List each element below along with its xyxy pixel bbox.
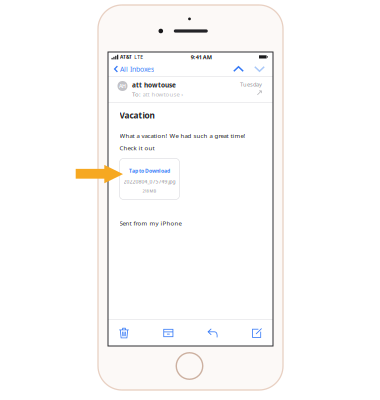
button[interactable]: All Inboxes — [110, 61, 158, 77]
staticText: All Inboxes — [120, 64, 154, 74]
staticText: att howtouse — [132, 80, 176, 89]
staticText: Tap to Download — [129, 167, 170, 174]
staticText: Vacation — [119, 110, 154, 121]
button[interactable]: Reply — [197, 321, 229, 345]
staticText: Tuesday — [240, 80, 262, 88]
staticText: Check it out — [119, 144, 154, 152]
button[interactable]: AH — [108, 76, 273, 102]
staticText: Sent from my iPhone — [119, 219, 181, 227]
staticText: att howtouse — [143, 90, 180, 98]
staticText: To: — [132, 90, 141, 98]
button[interactable]: Delete — [108, 321, 140, 345]
staticText: LTE — [134, 53, 143, 60]
button[interactable]: Compose — [241, 321, 273, 345]
staticText: AH — [119, 82, 126, 90]
staticText: 218 MB — [142, 188, 156, 194]
staticText: AT&T — [120, 54, 132, 60]
staticText: 9:41 AM — [191, 53, 212, 61]
staticText: What a vacation! We had such a great tim… — [119, 131, 245, 140]
staticText: 20220804_075749.jpg — [123, 178, 175, 185]
button[interactable]: Next message — [251, 63, 268, 75]
button[interactable]: Tap to Download — [119, 158, 179, 199]
staticText: › — [181, 90, 183, 98]
button[interactable]: Move to folder — [152, 321, 184, 345]
button[interactable]: Previous message — [230, 63, 247, 75]
